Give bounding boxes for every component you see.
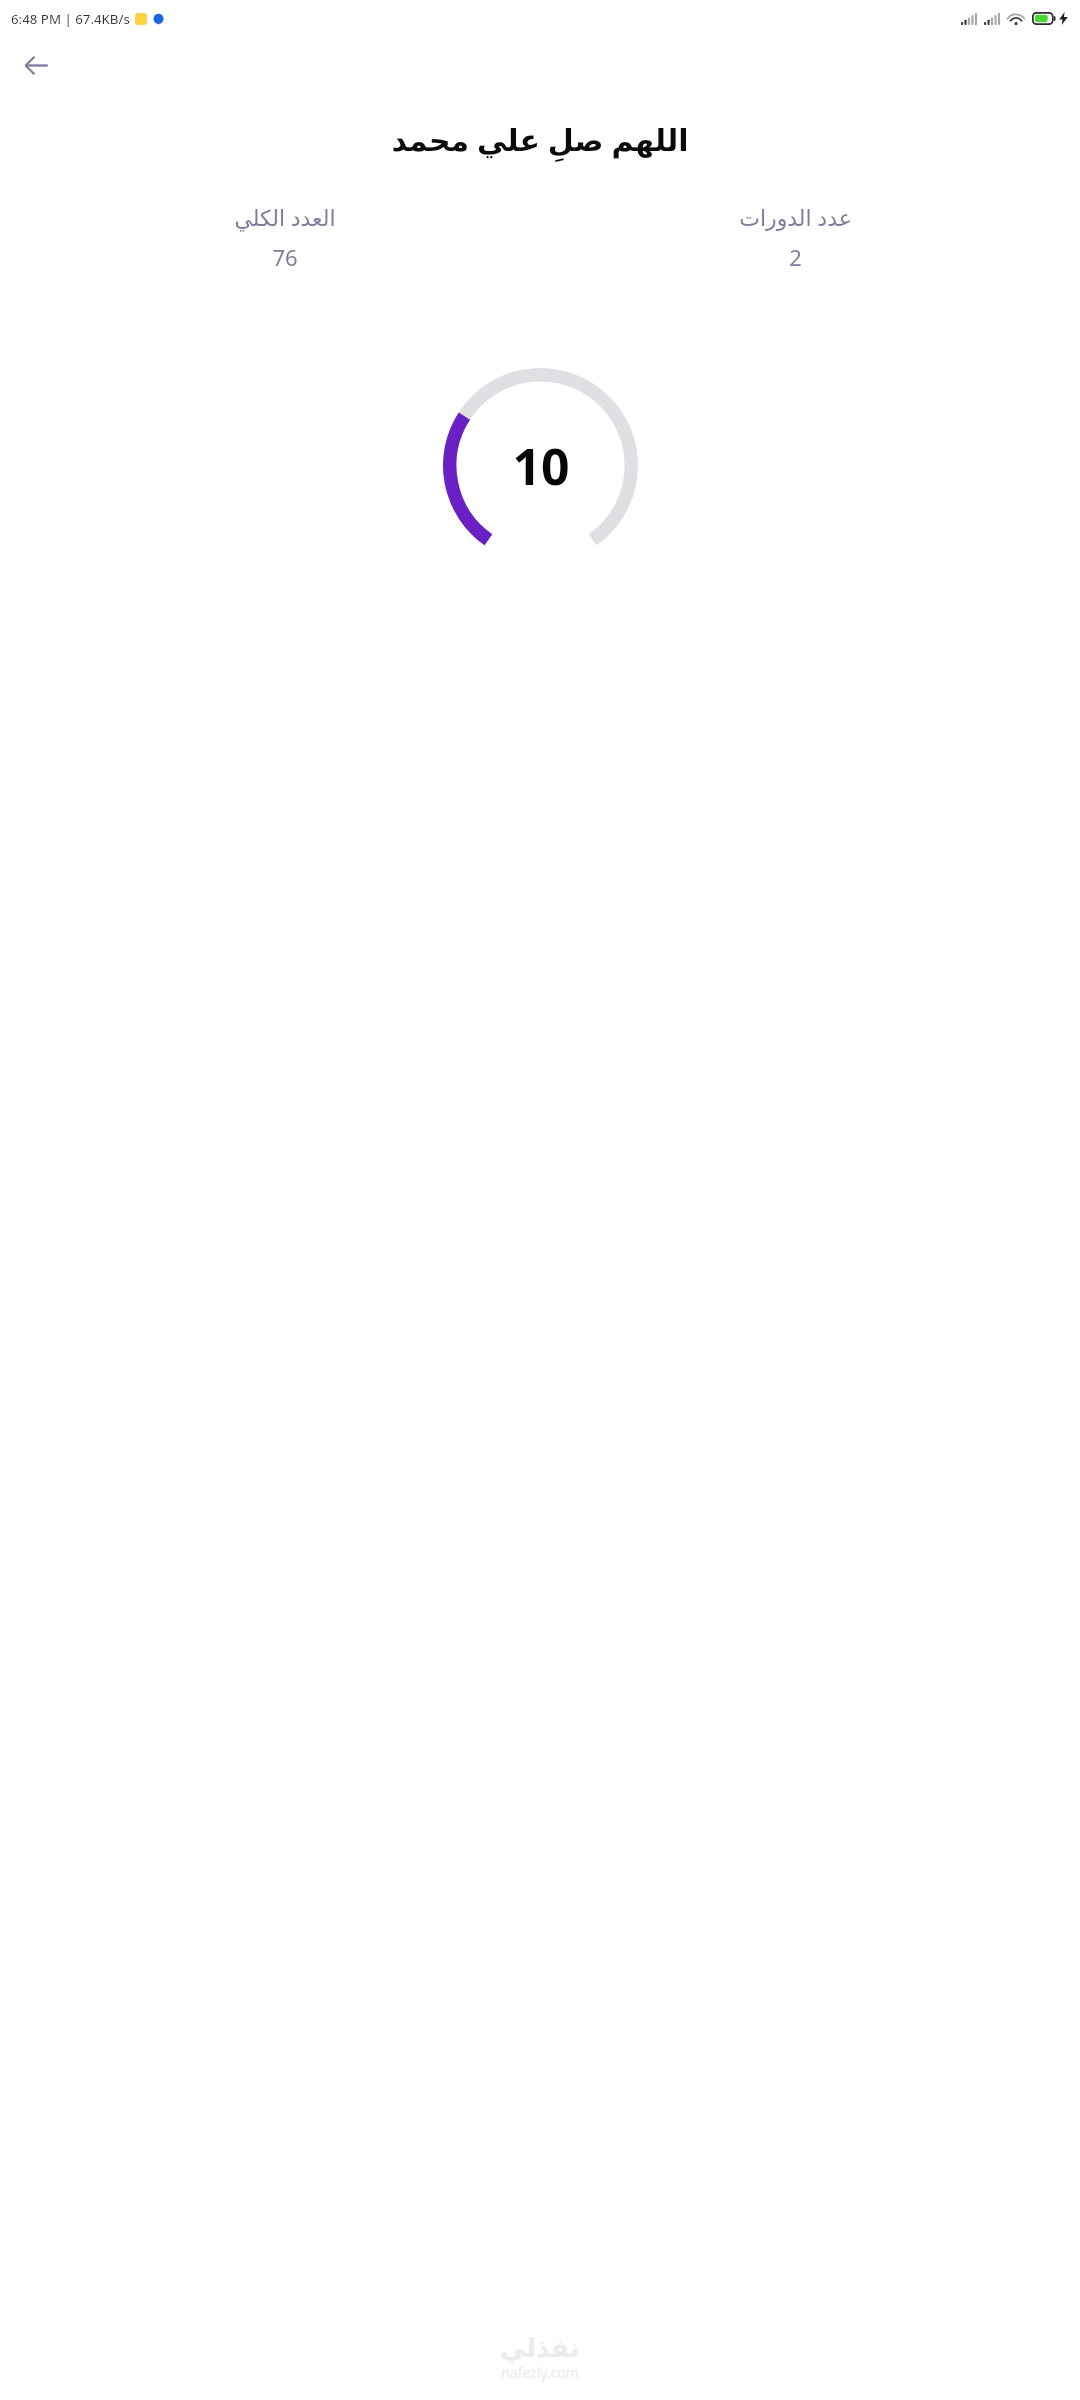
staticText: نفذلي bbox=[500, 2333, 580, 2363]
staticText: العدد الكلي bbox=[234, 202, 336, 232]
button[interactable]: Back bbox=[12, 41, 60, 89]
button[interactable]: Counter bbox=[443, 368, 638, 563]
staticText: 76 bbox=[272, 242, 298, 272]
button[interactable]: العدد الكلي bbox=[30, 202, 540, 272]
staticText: 2 bbox=[789, 242, 802, 272]
staticText: nafezly.com bbox=[501, 2363, 579, 2382]
staticText: اللهم صلِ علي محمد bbox=[24, 119, 1056, 160]
staticText: عدد الدورات bbox=[739, 202, 852, 232]
staticText: 6:48 PM | 67.4KB/s bbox=[11, 10, 130, 28]
button[interactable]: عدد الدورات bbox=[540, 202, 1050, 272]
staticText: 10 bbox=[512, 432, 570, 500]
